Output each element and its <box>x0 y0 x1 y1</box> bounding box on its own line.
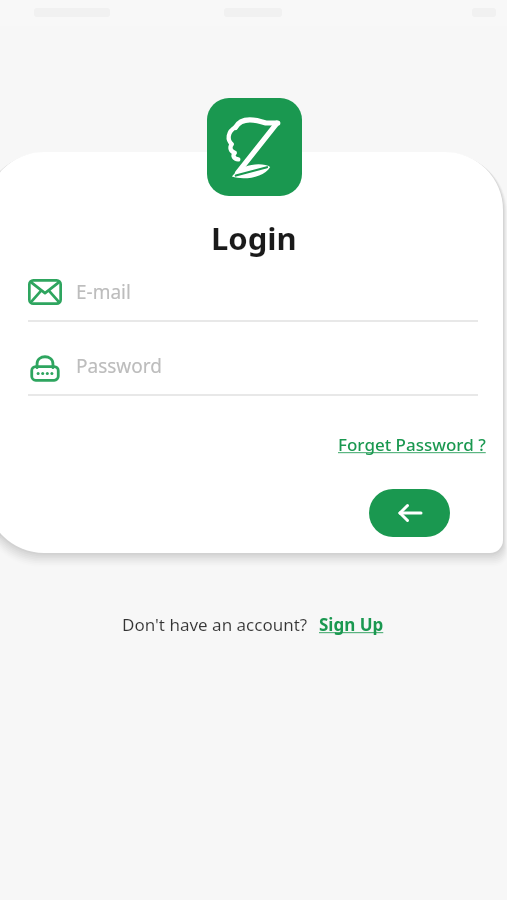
button[interactable]: Forget Password ? <box>332 429 492 460</box>
staticText: Login <box>211 217 297 259</box>
staticText: Sign Up <box>319 613 384 636</box>
button[interactable]: Submit login <box>369 489 450 537</box>
other: App logo <box>207 98 302 196</box>
staticText: Forget Password ? <box>338 433 486 456</box>
staticText: Password <box>76 353 162 379</box>
staticText: E-mail <box>76 279 131 305</box>
button[interactable]: Password <box>28 342 478 390</box>
staticText: Don't have an account? <box>122 613 308 636</box>
button[interactable]: Sign Up <box>317 610 386 639</box>
button[interactable]: E-mail <box>28 268 478 316</box>
